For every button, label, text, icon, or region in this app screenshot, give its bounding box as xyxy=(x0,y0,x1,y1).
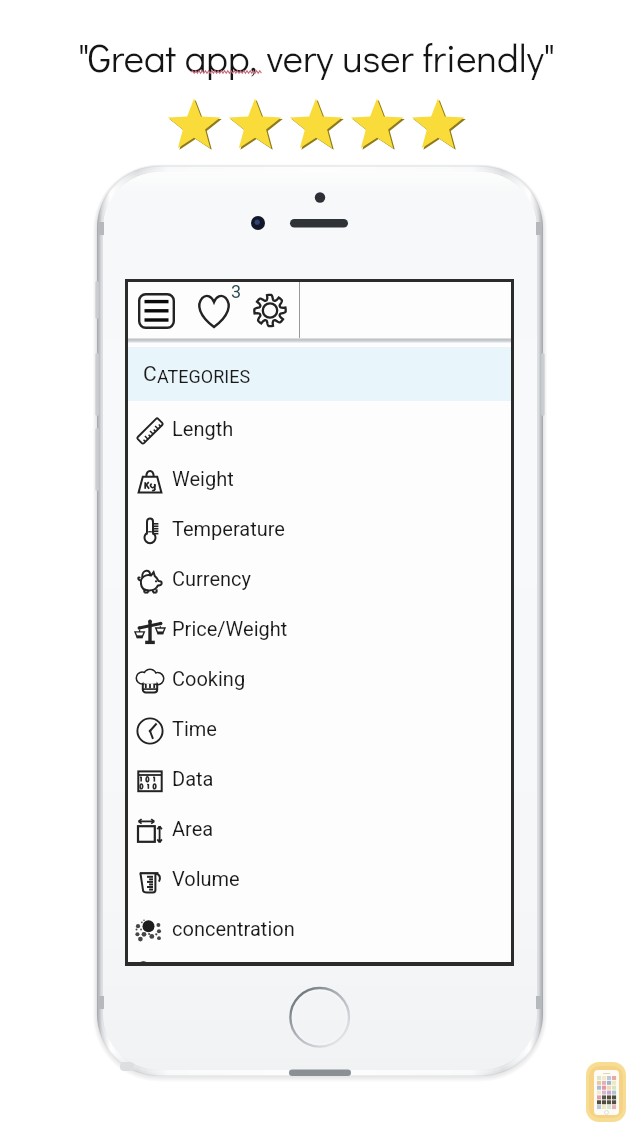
button[interactable]: Volume xyxy=(128,851,511,901)
staticText: Cooking xyxy=(172,667,246,690)
button[interactable]: Length xyxy=(128,401,511,451)
staticText: "Great app, very user friendly" xyxy=(78,32,555,82)
staticText: 3 xyxy=(231,282,242,302)
staticText: Data xyxy=(172,767,214,790)
staticText: Currency xyxy=(172,567,251,590)
button[interactable]: Cooking xyxy=(128,651,511,701)
staticText: C xyxy=(143,362,157,387)
button[interactable]: Speed xyxy=(128,951,511,962)
button[interactable]: Favorites xyxy=(197,283,243,329)
staticText: Temperature xyxy=(172,517,285,540)
button[interactable]: Time xyxy=(128,701,511,751)
button[interactable]: Settings xyxy=(254,294,286,327)
staticText: ATEGORIES xyxy=(157,366,251,387)
button[interactable]: Menu xyxy=(138,293,175,329)
button[interactable]: Temperature xyxy=(128,501,511,551)
button[interactable]: concentration xyxy=(128,901,511,951)
staticText: Weight xyxy=(172,467,234,490)
button[interactable]: Area xyxy=(128,801,511,851)
button[interactable]: Price/Weight xyxy=(128,601,511,651)
staticText: Volume xyxy=(172,867,240,890)
button[interactable]: App icon xyxy=(586,1062,626,1122)
button[interactable]: Currency xyxy=(128,551,511,601)
staticText: Time xyxy=(172,717,217,740)
button[interactable]: Data xyxy=(128,751,511,801)
staticText: Area xyxy=(172,817,214,840)
staticText: concentration xyxy=(172,917,295,940)
staticText: Length xyxy=(172,417,234,440)
staticText: Price/Weight xyxy=(172,617,288,640)
button[interactable]: Weight xyxy=(128,451,511,501)
